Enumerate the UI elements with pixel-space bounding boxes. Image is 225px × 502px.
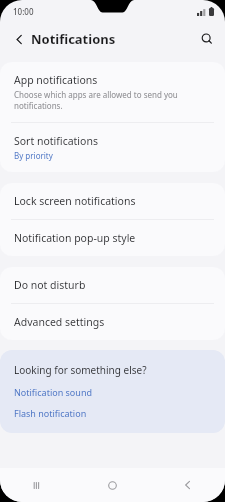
staticText: By priority — [14, 150, 53, 161]
button[interactable]: App notifications — [0, 62, 225, 122]
staticText: Notifications — [31, 30, 116, 48]
staticText: Flash notification — [14, 407, 87, 419]
staticText: Looking for something else? — [14, 363, 147, 377]
button[interactable]: Sort notifications — [0, 123, 225, 172]
button[interactable]: Flash notification — [14, 407, 211, 419]
staticText: Notification sound — [14, 386, 92, 398]
button[interactable]: Search — [194, 26, 220, 52]
button[interactable]: Back — [6, 26, 32, 52]
staticText: 10:00 — [13, 6, 34, 17]
staticText: Notification pop-up style — [14, 231, 136, 245]
button[interactable]: Home — [75, 468, 150, 502]
button[interactable]: Notification pop-up style — [0, 220, 225, 256]
button[interactable]: Lock screen notifications — [0, 183, 225, 219]
button[interactable]: Advanced settings — [0, 304, 225, 340]
staticText: Lock screen notifications — [14, 194, 136, 208]
staticText: Choose which apps are allowed to send yo… — [14, 89, 178, 111]
staticText: Advanced settings — [14, 315, 105, 329]
staticText: App notifications — [14, 73, 98, 87]
button[interactable]: Recent apps — [0, 468, 75, 502]
button[interactable]: Notification sound — [14, 386, 211, 398]
staticText: Sort notifications — [14, 134, 98, 148]
staticText: Do not disturb — [14, 278, 86, 292]
button[interactable]: Do not disturb — [0, 267, 225, 303]
button[interactable]: Back — [150, 468, 225, 502]
